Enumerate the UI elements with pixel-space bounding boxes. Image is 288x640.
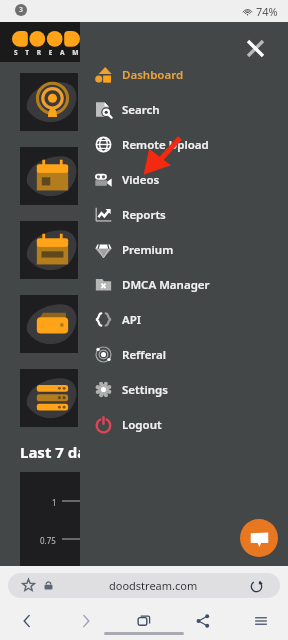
- staticText: Settings: [122, 382, 168, 398]
- button[interactable]: Remote Upload: [80, 127, 288, 162]
- staticText: Refferal: [122, 347, 167, 363]
- button[interactable]: Search: [80, 92, 288, 127]
- other: Bookmark: [22, 579, 35, 592]
- button[interactable]: Videos: [80, 162, 288, 197]
- button[interactable]: Tabs: [129, 607, 159, 635]
- staticText: API: [122, 312, 142, 328]
- button[interactable]: [20, 295, 78, 353]
- button[interactable]: [20, 221, 78, 279]
- staticText: Premium: [122, 242, 174, 258]
- staticText: doodstream.com: [109, 578, 198, 593]
- staticText: 3: [19, 5, 24, 15]
- staticText: S T R E A M: [14, 48, 82, 57]
- staticText: 1: [52, 497, 57, 508]
- staticText: DMCA Manager: [122, 277, 210, 293]
- staticText: 0.75: [40, 535, 56, 546]
- button[interactable]: [20, 147, 78, 205]
- button[interactable]: Logout: [80, 407, 288, 442]
- staticText: Search: [122, 102, 160, 118]
- button[interactable]: Close menu: [236, 29, 274, 67]
- button[interactable]: Dashboard: [80, 57, 288, 92]
- staticText: Last 7 days: [20, 442, 103, 462]
- staticText: Logout: [122, 417, 162, 433]
- button[interactable]: Share: [188, 607, 218, 635]
- staticText: Remote Upload: [122, 137, 209, 153]
- button[interactable]: DMCA Manager: [80, 267, 288, 302]
- button[interactable]: Menu: [246, 607, 276, 635]
- button[interactable]: Reload: [248, 578, 264, 594]
- button[interactable]: [20, 369, 78, 427]
- button[interactable]: Forward: [71, 607, 101, 635]
- button[interactable]: Reports: [80, 197, 288, 232]
- staticText: Videos: [122, 172, 160, 188]
- button[interactable]: API: [80, 302, 288, 337]
- button[interactable]: Settings: [80, 372, 288, 407]
- staticText: Reports: [122, 207, 166, 223]
- staticText: 74%: [256, 4, 278, 19]
- button[interactable]: doodstream.com: [8, 573, 280, 598]
- staticText: Dashboard: [122, 67, 184, 83]
- button[interactable]: [20, 73, 78, 131]
- button[interactable]: Premium: [80, 232, 288, 267]
- button[interactable]: Refferal: [80, 337, 288, 372]
- button[interactable]: Live chat: [240, 519, 278, 557]
- button[interactable]: Back: [12, 607, 42, 635]
